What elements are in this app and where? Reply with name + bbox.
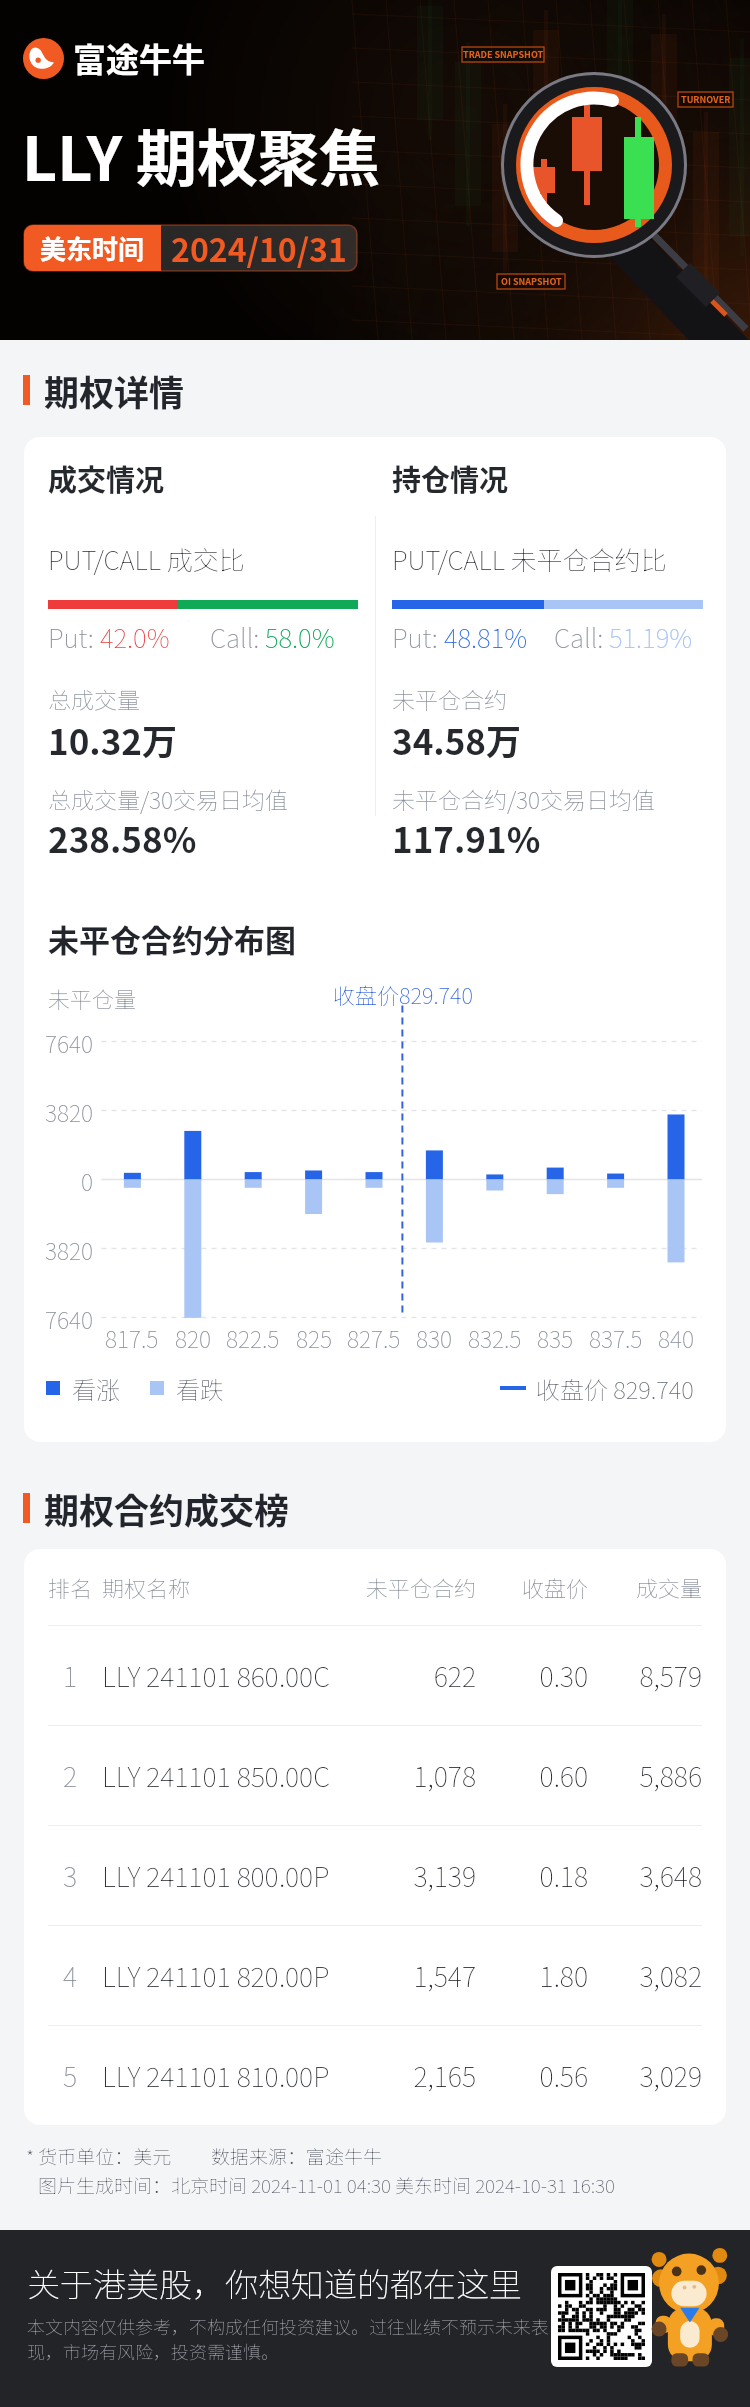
- staticText: 0.30: [476, 1656, 588, 1695]
- staticText: 2,165: [348, 2056, 476, 2095]
- staticText: 837.5: [589, 1321, 643, 1354]
- staticText: 1,078: [348, 1756, 476, 1795]
- staticText: 3,029: [588, 2056, 702, 2095]
- staticText: 未平仓合约/30交易日均值: [392, 782, 656, 815]
- staticText: Call:: [210, 618, 265, 656]
- staticText: 看跌: [176, 1371, 224, 1405]
- staticText: LLY 241101 810.00P: [102, 2056, 348, 2095]
- staticText: 排名: [48, 1571, 102, 1603]
- staticText: 期权名称: [102, 1571, 348, 1603]
- staticText: 未平仓合约: [392, 682, 507, 715]
- staticText: * 货币单位：美元: [26, 2142, 172, 2170]
- staticText: Put:: [392, 618, 444, 656]
- staticText: 收盘价829.740: [333, 978, 473, 1010]
- staticText: LLY 241101 860.00C: [102, 1656, 348, 1695]
- staticText: LLY 241101 800.00P: [102, 1856, 348, 1895]
- button[interactable]: 美东时间: [24, 225, 357, 271]
- staticText: 5,886: [588, 1756, 702, 1795]
- button[interactable]: 5: [24, 2025, 726, 2125]
- staticText: 关于港美股，你想知道的都在这里: [27, 2259, 522, 2307]
- staticText: 7640: [45, 1026, 93, 1059]
- staticText: 51.19%: [609, 618, 693, 656]
- staticText: 3,139: [348, 1856, 476, 1895]
- staticText: 总成交量: [48, 682, 140, 715]
- staticText: 0.56: [476, 2056, 588, 2095]
- staticText: 总成交量/30交易日均值: [48, 782, 289, 815]
- button[interactable]: 1: [24, 1625, 726, 1725]
- staticText: 美东时间: [40, 229, 145, 267]
- staticText: PUT/CALL 成交比: [48, 540, 245, 578]
- button[interactable]: 4: [24, 1925, 726, 2025]
- staticText: Put:: [48, 618, 100, 656]
- staticText: 238.58%: [48, 812, 197, 863]
- staticText: PUT/CALL 未平仓合约比: [392, 540, 667, 578]
- staticText: 本文内容仅供参考，不构成任何投资建议。过往业绩不预示未来表 现，市场有风险，投资…: [27, 2313, 549, 2364]
- staticText: 835: [537, 1321, 573, 1354]
- staticText: 未平仓合约分布图: [48, 916, 296, 961]
- staticText: TRADE SNAPSHOT: [463, 48, 544, 61]
- staticText: 117.91%: [392, 812, 541, 863]
- staticText: 10.32万: [48, 714, 177, 765]
- staticText: 1: [48, 1656, 77, 1695]
- staticText: 4: [48, 1956, 77, 1995]
- staticText: 5: [48, 2056, 77, 2095]
- staticText: OI SNAPSHOT: [501, 275, 562, 288]
- staticText: 0.60: [476, 1756, 588, 1795]
- staticText: 2024/10/31: [171, 225, 347, 271]
- button[interactable]: 富途牛牛 logo: [23, 34, 205, 82]
- staticText: 827.5: [347, 1321, 401, 1354]
- staticText: 期权合约成交榜: [44, 1483, 290, 1534]
- staticText: 期权详情: [44, 365, 185, 416]
- staticText: 622: [348, 1656, 476, 1695]
- staticText: 成交情况: [48, 457, 165, 499]
- staticText: 825: [296, 1321, 332, 1354]
- staticText: 48.81%: [444, 618, 528, 656]
- staticText: 0: [81, 1164, 93, 1197]
- staticText: 840: [658, 1321, 694, 1354]
- staticText: 820: [175, 1321, 211, 1354]
- button[interactable]: 3: [24, 1825, 726, 1925]
- staticText: 未平仓量: [48, 982, 137, 1014]
- staticText: Call:: [554, 618, 609, 656]
- staticText: 1,547: [348, 1956, 476, 1995]
- staticText: 0.18: [476, 1856, 588, 1895]
- button[interactable]: QR code: [551, 2266, 652, 2367]
- staticText: 3820: [45, 1095, 93, 1128]
- staticText: 8,579: [588, 1656, 702, 1695]
- staticText: 832.5: [468, 1321, 522, 1354]
- staticText: 数据来源：富途牛牛: [211, 2142, 383, 2170]
- staticText: LLY 241101 820.00P: [102, 1956, 348, 1995]
- staticText: 持仓情况: [392, 457, 509, 499]
- staticText: 3820: [45, 1233, 93, 1266]
- staticText: 1.80: [476, 1956, 588, 1995]
- staticText: 成交量: [588, 1571, 702, 1603]
- staticText: 收盘价 829.740: [536, 1371, 694, 1405]
- staticText: 34.58万: [392, 714, 521, 765]
- staticText: 3,082: [588, 1956, 702, 1995]
- staticText: 7640: [45, 1302, 93, 1335]
- staticText: 看涨: [72, 1371, 120, 1405]
- staticText: 图片生成时间：北京时间 2024-11-01 04:30 美东时间 2024-1…: [38, 2171, 615, 2199]
- staticText: 3: [48, 1856, 77, 1895]
- staticText: 817.5: [105, 1321, 159, 1354]
- button[interactable]: 2: [24, 1725, 726, 1825]
- staticText: 830: [416, 1321, 452, 1354]
- staticText: TURNOVER: [681, 93, 731, 106]
- staticText: 3,648: [588, 1856, 702, 1895]
- staticText: 42.0%: [100, 618, 170, 656]
- staticText: 58.0%: [265, 618, 335, 656]
- staticText: 收盘价: [476, 1571, 588, 1603]
- staticText: 2: [48, 1756, 77, 1795]
- staticText: 未平仓合约: [348, 1571, 476, 1603]
- staticText: LLY 期权聚焦: [22, 110, 381, 198]
- staticText: LLY 241101 850.00C: [102, 1756, 348, 1795]
- staticText: 富途牛牛: [73, 34, 205, 82]
- staticText: 822.5: [226, 1321, 280, 1354]
